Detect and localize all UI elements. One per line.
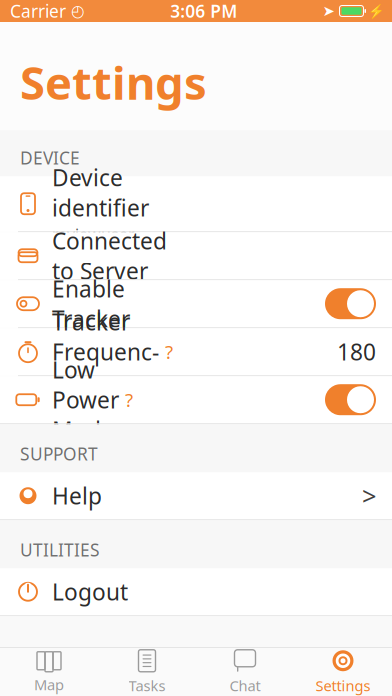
staticText: Tasks <box>128 676 165 695</box>
staticText: Tracker Frequency <box>52 307 159 397</box>
button[interactable]: Tracker Frequency <box>0 328 392 375</box>
staticText: 3:06 PM <box>170 0 237 22</box>
button[interactable]: Device identifier <box>0 176 392 231</box>
staticText: Logout <box>52 577 128 607</box>
staticText: ◴ <box>71 2 85 20</box>
staticText: ➤ <box>322 3 334 19</box>
staticText: ⚡ <box>368 3 385 19</box>
staticText: Chat <box>229 676 260 695</box>
button[interactable]: Logout <box>0 568 392 615</box>
button[interactable]: Settings <box>294 648 392 696</box>
button[interactable]: Chat <box>196 648 294 696</box>
staticText: Settings <box>315 676 370 695</box>
staticText: ? <box>165 339 173 364</box>
staticText: ? <box>125 387 133 412</box>
staticText: Carrier <box>10 0 66 22</box>
staticText: reviewuser <box>52 224 135 245</box>
staticText: > <box>362 479 376 512</box>
staticText: SUPPORT <box>20 442 98 465</box>
staticText: Enable Tracker <box>52 274 130 334</box>
button[interactable]: Tasks <box>98 648 196 696</box>
staticText: Settings <box>20 52 207 112</box>
button[interactable]: Connected to Server <box>0 232 392 279</box>
staticText: Help <box>52 481 102 511</box>
staticText: Device identifier <box>52 162 149 223</box>
staticText: UTILITIES <box>20 538 100 561</box>
staticText: Low Power Mode <box>52 355 119 445</box>
button[interactable]: Enable Tracker <box>0 280 392 327</box>
staticText: Connected to Server <box>52 226 167 286</box>
button[interactable]: Help <box>0 472 392 519</box>
staticText: 180 <box>337 337 376 367</box>
button[interactable]: Map <box>0 648 98 696</box>
button[interactable]: Low Power Mode <box>0 376 392 423</box>
staticText: DEVICE <box>20 146 80 169</box>
staticText: Map <box>34 675 64 694</box>
